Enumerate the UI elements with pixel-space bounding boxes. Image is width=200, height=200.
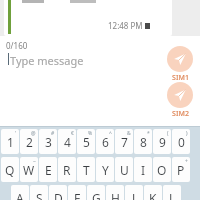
staticText: U	[120, 162, 129, 178]
staticText: P	[177, 162, 185, 178]
button[interactable]: (	[153, 129, 171, 154]
staticText: ~	[33, 158, 36, 165]
staticText: +	[185, 158, 188, 165]
staticText: D	[54, 190, 63, 200]
staticText: I	[141, 162, 146, 178]
staticText: ^	[109, 130, 112, 137]
button[interactable]: J	[125, 185, 143, 200]
button[interactable]: I	[134, 157, 152, 182]
button[interactable]: ~	[20, 157, 38, 182]
staticText: W	[23, 162, 35, 178]
button[interactable]: E	[39, 157, 57, 182]
staticText: 1	[7, 134, 14, 150]
button[interactable]: O	[153, 157, 171, 182]
staticText: SIM2	[172, 109, 189, 119]
staticText: L	[169, 190, 176, 200]
staticText: T	[83, 162, 90, 178]
staticText: 4	[64, 134, 71, 150]
staticText: '	[15, 130, 17, 137]
button[interactable]: ^	[96, 129, 114, 154]
button[interactable]: €	[58, 129, 76, 154]
staticText: F	[74, 190, 81, 200]
button[interactable]: #	[39, 129, 57, 154]
staticText: 0/160	[6, 40, 28, 51]
staticText: Q	[5, 162, 15, 178]
staticText: @	[31, 130, 36, 137]
button[interactable]: R	[58, 157, 76, 182]
staticText: Y	[102, 162, 109, 178]
staticText: G	[92, 190, 101, 200]
button[interactable]: S	[30, 185, 48, 200]
button[interactable]: *	[134, 129, 152, 154]
button[interactable]: '	[1, 129, 19, 154]
staticText: (	[167, 130, 169, 137]
button[interactable]: U	[115, 157, 133, 182]
staticText: E	[45, 162, 52, 178]
staticText: J	[132, 190, 136, 200]
staticText: 6	[102, 134, 109, 150]
button[interactable]: )	[172, 129, 190, 154]
staticText: S	[36, 190, 43, 200]
staticText: *	[147, 130, 150, 137]
staticText: 5	[83, 134, 90, 150]
button[interactable]: D	[49, 185, 67, 200]
staticText: 3	[45, 134, 52, 150]
button[interactable]: 12:48 PM	[4, 0, 172, 36]
staticText: SIM1	[172, 73, 189, 83]
staticText: 9	[159, 134, 166, 150]
button[interactable]: G	[87, 185, 105, 200]
staticText: O	[157, 162, 167, 178]
button[interactable]: T	[77, 157, 95, 182]
button[interactable]: K	[144, 185, 162, 200]
staticText: 0	[178, 134, 185, 150]
button[interactable]: Q	[1, 157, 19, 182]
staticText: )	[186, 130, 188, 137]
staticText: R	[63, 162, 71, 178]
button[interactable]: F	[68, 185, 86, 200]
button[interactable]: %	[77, 129, 95, 154]
staticText: #	[51, 130, 55, 137]
staticText: €	[71, 130, 74, 137]
staticText: 7	[121, 134, 128, 150]
button[interactable]: H	[106, 185, 124, 200]
staticText: 12:48 PM	[108, 20, 143, 31]
button[interactable]: A	[11, 185, 29, 200]
staticText: &	[127, 130, 131, 137]
staticText: 8	[140, 134, 147, 150]
staticText: H	[111, 190, 120, 200]
staticText: 2	[26, 134, 33, 150]
button[interactable]: +	[172, 157, 190, 182]
button[interactable]: Type message	[10, 53, 84, 68]
button[interactable]: Send with SIM1	[167, 46, 193, 83]
button[interactable]: @	[20, 129, 38, 154]
button[interactable]: Send with SIM2	[167, 82, 193, 119]
staticText: K	[149, 190, 157, 200]
staticText: %	[88, 130, 93, 137]
button[interactable]: &	[115, 129, 133, 154]
button[interactable]: L	[163, 185, 181, 200]
button[interactable]: Y	[96, 157, 114, 182]
staticText: A	[16, 190, 24, 200]
